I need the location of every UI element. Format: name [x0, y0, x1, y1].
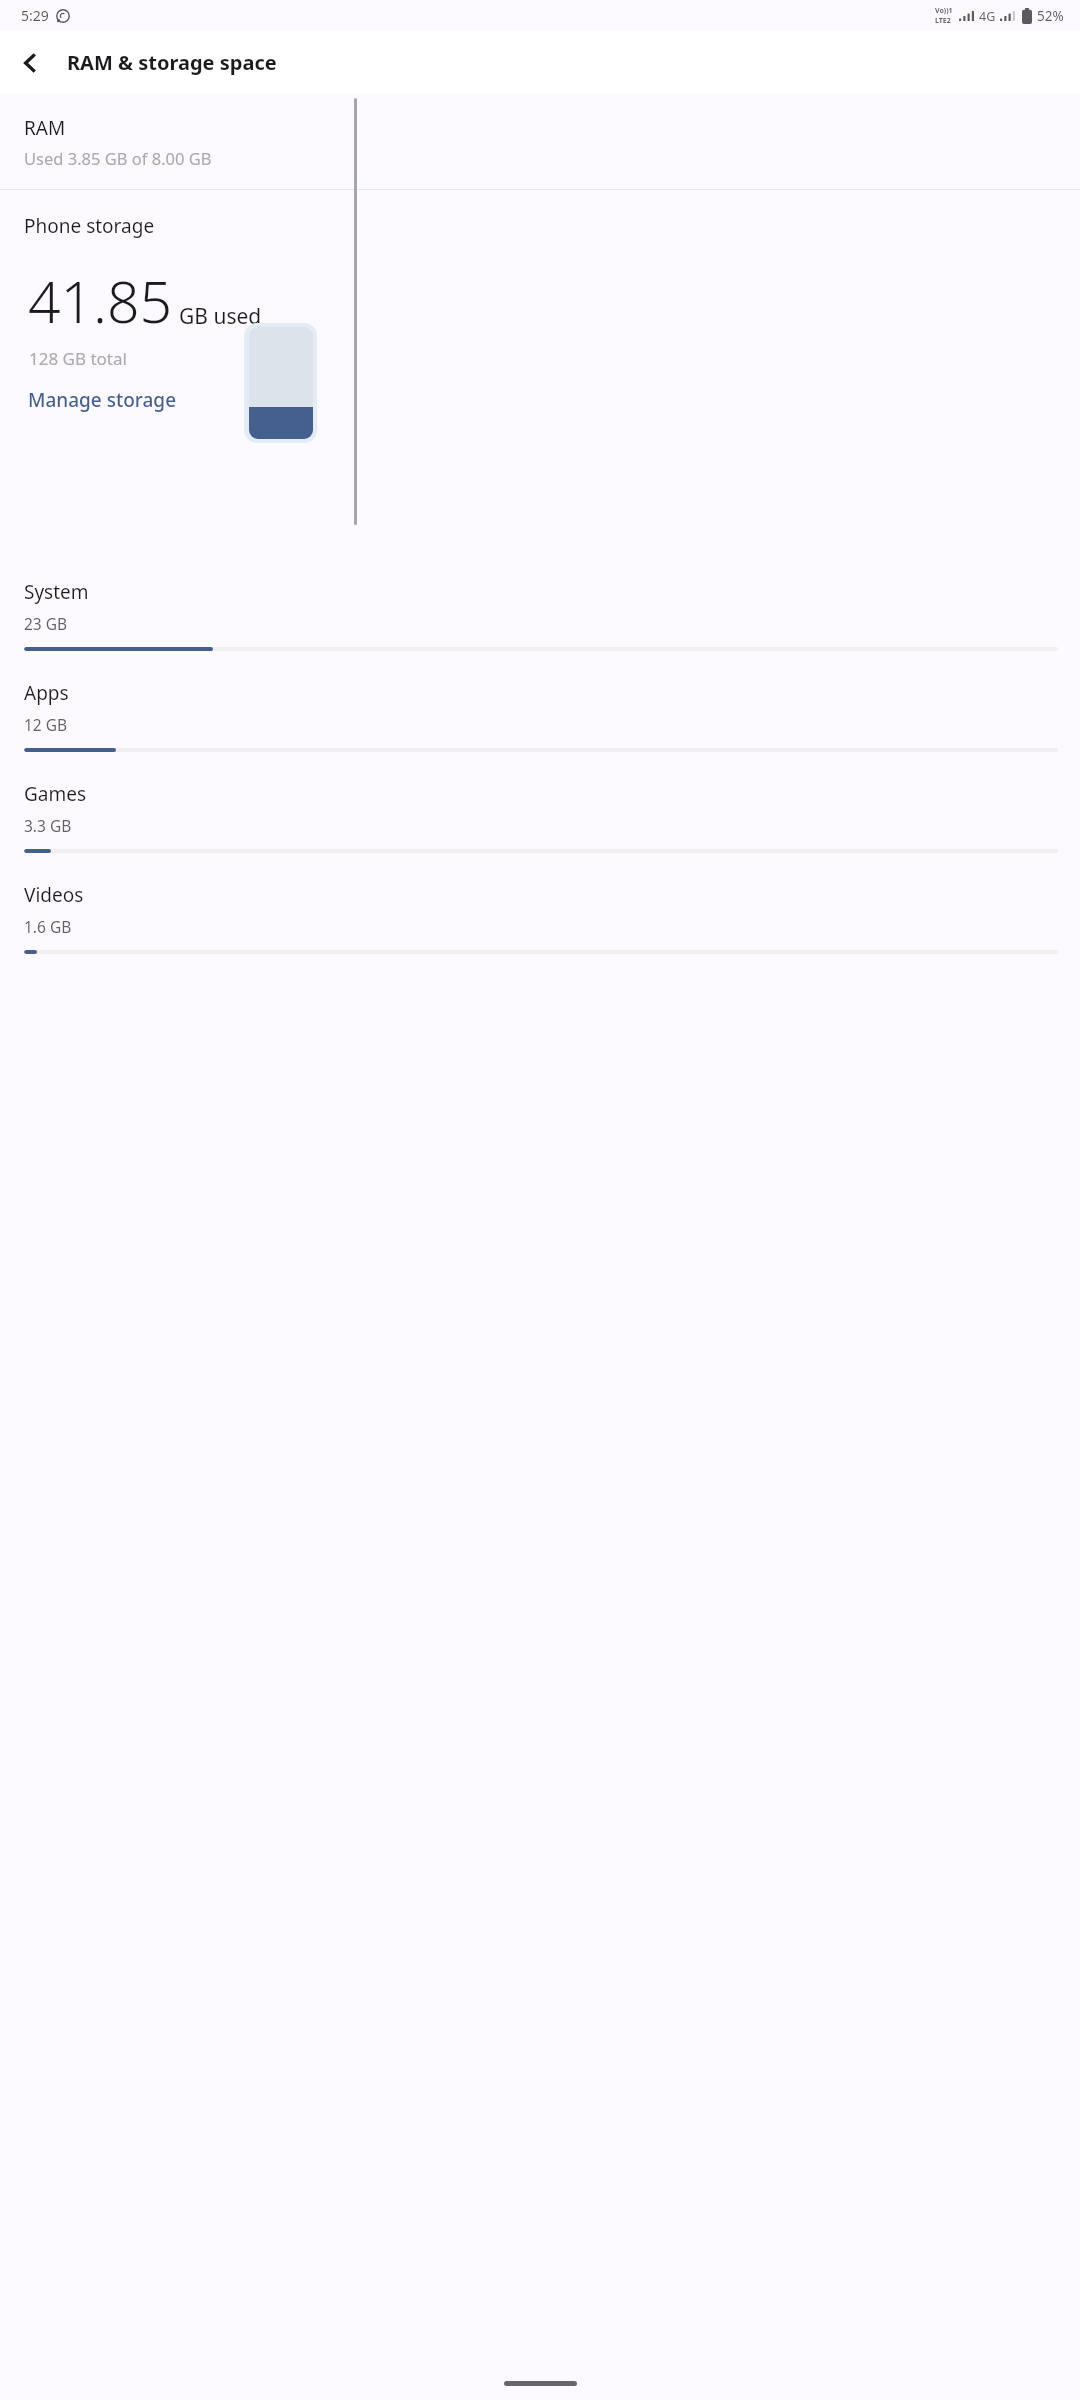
button[interactable]: Videos	[0, 882, 1080, 983]
staticText: 23 GB	[24, 613, 68, 634]
button[interactable]: Manage storage	[28, 387, 177, 413]
staticText: Apps	[24, 680, 69, 706]
staticText: GB used	[179, 302, 262, 331]
button[interactable]: Games	[0, 781, 1080, 882]
staticText: 1.6 GB	[24, 916, 72, 937]
staticText: LTE2	[935, 16, 951, 26]
staticText: 128 GB total	[29, 347, 127, 370]
staticText: 41.85	[28, 262, 173, 340]
staticText: RAM	[24, 115, 66, 141]
staticText: Vo))1	[935, 6, 953, 16]
staticText: Manage storage	[28, 387, 177, 413]
staticText: 3.3 GB	[24, 815, 72, 836]
staticText: 12 GB	[24, 714, 68, 735]
staticText: System	[24, 579, 89, 605]
staticText: Games	[24, 781, 87, 807]
button[interactable]: Home gesture bar	[504, 2381, 577, 2386]
staticText: Phone storage	[24, 213, 155, 239]
staticText: 5:29	[21, 6, 49, 25]
button[interactable]: System	[0, 579, 1080, 680]
button[interactable]: RAM	[0, 94, 1080, 189]
staticText: Used 3.85 GB of 8.00 GB	[24, 147, 212, 169]
button[interactable]: Back	[6, 39, 54, 87]
staticText: Videos	[24, 882, 84, 908]
staticText: 4G	[979, 8, 996, 25]
button[interactable]: Apps	[0, 680, 1080, 781]
staticText: 52%	[1037, 7, 1064, 25]
staticText: RAM & storage space	[67, 49, 277, 76]
